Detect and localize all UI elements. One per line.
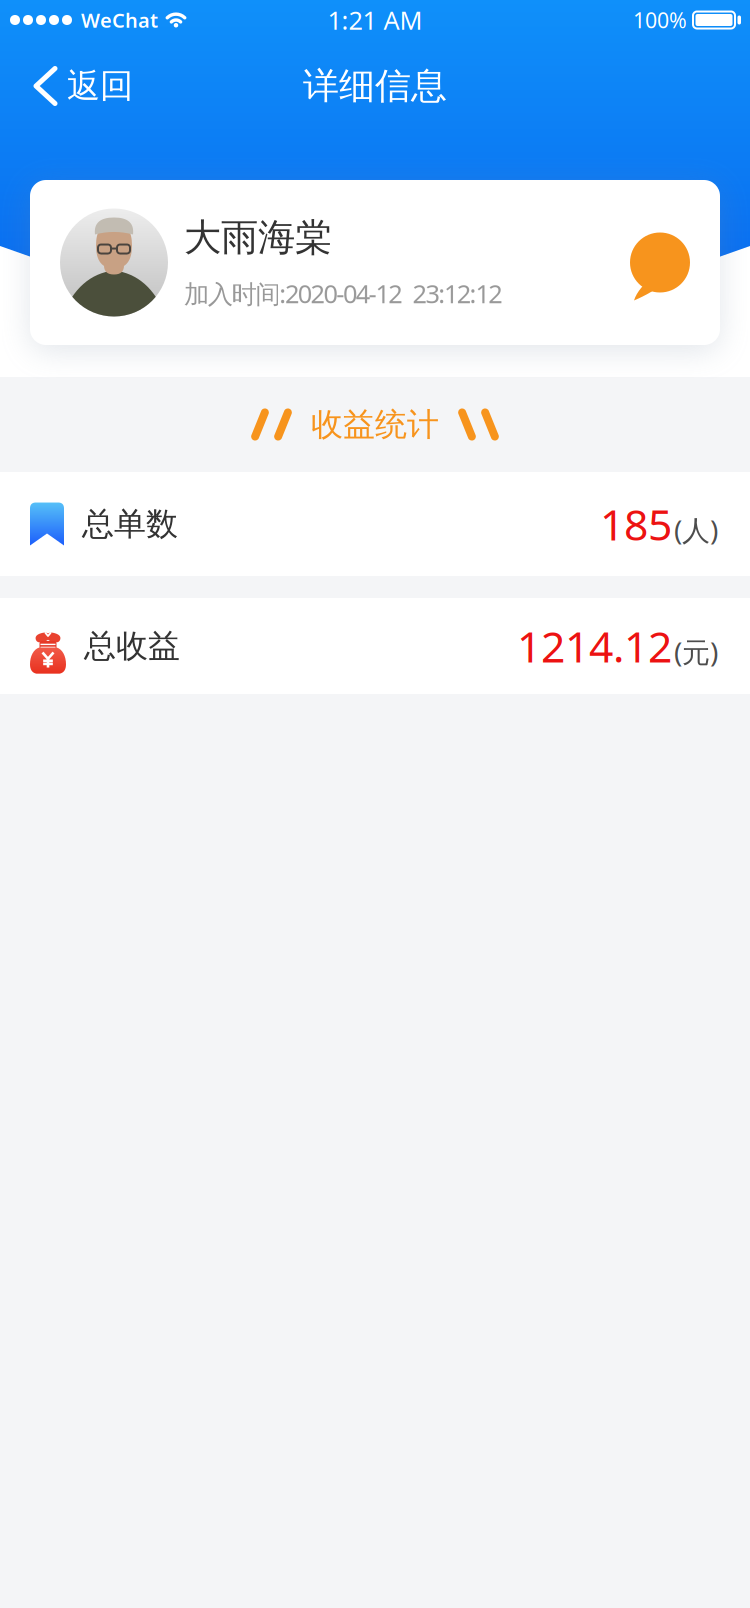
button[interactable]: 总单数 <box>0 472 750 576</box>
button[interactable]: 返回 <box>36 65 133 106</box>
staticText: 1214.12 <box>517 618 672 674</box>
staticText: (元) <box>674 633 718 670</box>
button[interactable]: 发消息 <box>630 232 690 292</box>
staticText: 100% <box>633 6 687 34</box>
staticText: (人) <box>674 511 718 548</box>
staticText: 详细信息 <box>303 64 447 108</box>
staticText: 返回 <box>67 65 133 106</box>
staticText: 总收益 <box>84 626 180 666</box>
staticText: 收益统计 <box>311 405 439 444</box>
button[interactable]: 总收益 <box>0 598 750 694</box>
staticText: 185 <box>600 496 672 552</box>
staticText: 总单数 <box>82 504 178 544</box>
staticText: 加入时间:2020-04-12 23:12:12 <box>184 277 502 310</box>
staticText: WeChat <box>81 7 158 33</box>
staticText: 大雨海棠 <box>184 215 332 261</box>
staticText: 1:21 AM <box>327 3 422 37</box>
